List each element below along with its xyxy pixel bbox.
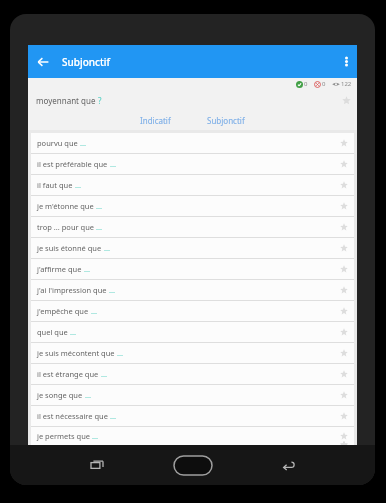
button[interactable]: je songe que [31,385,354,405]
staticText: Subjonctif [62,55,111,69]
button[interactable]: trop ... pour que [31,217,354,237]
button[interactable]: Favorite [335,90,357,110]
button[interactable]: j'affirme que [31,259,354,279]
staticText: ... [91,306,98,316]
staticText: pourvu que [37,138,80,148]
staticText: j'affirme que [37,264,84,274]
button[interactable]: Favorite [334,406,354,426]
button[interactable]: 0 [295,80,309,88]
button[interactable]: Favorite [334,196,354,216]
button[interactable]: je m'étonne que [31,196,354,216]
button[interactable]: Favorite [334,427,354,445]
staticText: ... [96,222,103,232]
staticText: Indicatif [140,115,171,126]
staticText: j'empêche que [37,306,91,316]
button[interactable]: il est nécessaire que [31,406,354,426]
staticText: Subjonctif [207,115,245,126]
staticText: 122 [341,80,352,88]
staticText: ... [109,285,116,295]
button[interactable]: j'empêche que [31,301,354,321]
button[interactable]: je suis mécontent que [31,343,354,363]
staticText: il faut que [37,180,75,190]
button[interactable]: Favorite [334,259,354,279]
staticText: ... [84,264,91,274]
button[interactable]: je suis étonné que [31,238,354,258]
button[interactable]: il faut que [31,175,354,195]
button[interactable]: 0 [313,80,327,88]
staticText: il est étrange que [37,369,101,379]
button[interactable]: j'ai l'impression que [31,280,354,300]
staticText: quel que [37,327,70,337]
staticText: ... [80,138,87,148]
staticText: ... [70,327,77,337]
button[interactable]: pourvu que [31,133,354,153]
button[interactable]: Favorite [334,385,354,405]
button[interactable]: Favorite [334,364,354,384]
button[interactable]: je permets que [31,427,354,445]
button[interactable]: Favorite [334,280,354,300]
staticText: ... [104,243,111,253]
button[interactable]: Favorite [334,133,354,153]
button[interactable]: Favorite [334,175,354,195]
staticText: ... [101,369,108,379]
staticText: trop ... pour que [37,222,96,232]
button[interactable]: Subjonctif [197,112,255,129]
button[interactable]: Back [241,448,337,482]
staticText: ... [110,159,117,169]
button[interactable]: Favorite [334,301,354,321]
button[interactable]: Favorite [334,154,354,174]
staticText: ... [96,201,103,211]
staticText: ... [85,390,92,400]
button[interactable]: Favorite [334,238,354,258]
staticText: je suis étonné que [37,243,104,253]
staticText: ... [75,180,82,190]
staticText: j'ai l'impression que [37,285,109,295]
staticText: ... [92,431,99,441]
button[interactable]: moyennant que [28,90,357,110]
button[interactable]: Favorite [334,343,354,363]
button[interactable]: Back [28,45,58,78]
staticText: je suis mécontent que [37,348,117,358]
staticText: je songe que [37,390,85,400]
button[interactable]: quel que [31,322,354,342]
staticText: je m'étonne que [37,201,96,211]
staticText: ? [98,95,102,106]
staticText: 0 [304,80,308,88]
staticText: ... [110,411,117,421]
button[interactable]: Favorite [334,217,354,237]
staticText: ... [117,348,124,358]
staticText: moyennant que [36,95,98,106]
staticText: il est nécessaire que [37,411,110,421]
staticText: je permets que [37,431,92,441]
staticText: il est préférable que [37,159,110,169]
button[interactable]: Favorite [334,322,354,342]
button[interactable]: Recents [49,448,145,482]
button[interactable]: More options [335,45,357,78]
button[interactable]: 122 [331,80,353,88]
staticText: 0 [322,80,326,88]
button[interactable]: il est préférable que [31,154,354,174]
button[interactable]: Home [145,448,241,482]
button[interactable]: il est étrange que [31,364,354,384]
button[interactable]: Indicatif [130,112,181,129]
